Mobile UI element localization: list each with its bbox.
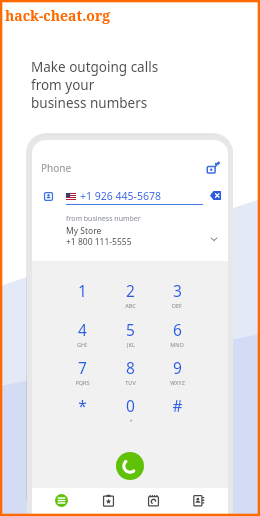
staticText: 1 xyxy=(78,280,87,301)
button[interactable]: 4 xyxy=(61,319,103,349)
staticText: 3 xyxy=(173,280,182,301)
staticText: 2 xyxy=(126,280,135,301)
button[interactable]: Contacts xyxy=(176,488,220,516)
staticText: GHI xyxy=(77,341,87,348)
staticText: 5 xyxy=(126,319,135,340)
staticText: +1 926 445-5678 xyxy=(80,189,161,203)
staticText: ABC xyxy=(125,302,136,309)
button[interactable]: Favorites xyxy=(86,488,130,516)
button[interactable]: # xyxy=(156,395,198,425)
button[interactable]: 2 xyxy=(109,280,151,310)
button[interactable]: from business number xyxy=(32,213,228,253)
staticText: hack-cheat.org xyxy=(5,6,111,25)
staticText: 9 xyxy=(173,357,182,378)
button[interactable]: Recents xyxy=(131,488,175,516)
staticText: 4 xyxy=(78,319,87,340)
staticText: 0 xyxy=(126,395,135,416)
button[interactable]: 8 xyxy=(109,357,151,387)
staticText: Make outgoing calls from your business n… xyxy=(31,58,159,112)
button[interactable]: 1 xyxy=(61,280,103,310)
staticText: MNO xyxy=(170,341,184,348)
staticText: JKL xyxy=(127,341,135,348)
staticText: PQRS xyxy=(75,379,90,386)
button[interactable]: 7 xyxy=(61,357,103,387)
button[interactable]: 9 xyxy=(156,357,198,387)
staticText: WXYZ xyxy=(170,379,185,386)
staticText: 8 xyxy=(126,357,135,378)
staticText: from business number xyxy=(66,214,141,224)
button[interactable]: Keypad xyxy=(39,488,83,516)
staticText: 7 xyxy=(78,357,87,378)
button[interactable]: 0 xyxy=(109,395,151,425)
staticText: Phone xyxy=(41,161,72,175)
button[interactable]: Backspace xyxy=(210,191,221,200)
button[interactable]: Call xyxy=(116,452,144,480)
staticText: + xyxy=(129,417,133,424)
staticText: +1 800 111-5555 xyxy=(66,236,132,248)
button[interactable]: 5 xyxy=(109,319,151,349)
staticText: 6 xyxy=(173,319,182,340)
staticText: # xyxy=(172,395,183,416)
button[interactable]: Video call xyxy=(207,160,221,174)
button[interactable]: 3 xyxy=(156,280,198,310)
staticText: TUV xyxy=(125,379,136,386)
staticText: My Store xyxy=(66,225,102,237)
staticText: DEF xyxy=(172,302,182,309)
button[interactable]: * xyxy=(61,395,103,425)
button[interactable]: Add contact xyxy=(44,192,53,201)
staticText: * xyxy=(78,395,87,416)
button[interactable]: 6 xyxy=(156,319,198,349)
